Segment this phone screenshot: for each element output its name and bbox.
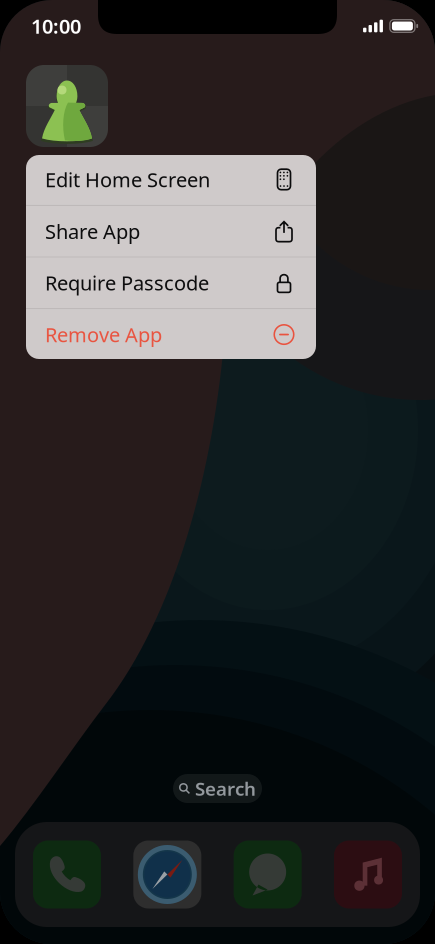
staticText: Require Passcode xyxy=(45,270,209,296)
staticText: Search xyxy=(195,776,256,801)
button[interactable]: Require Passcode xyxy=(26,257,316,308)
button[interactable]: Messages xyxy=(234,840,302,908)
staticText: Remove App xyxy=(45,321,162,348)
button[interactable]: Safari xyxy=(133,840,201,908)
staticText: 10:00 xyxy=(31,13,81,39)
button[interactable]: Music xyxy=(334,840,402,908)
button[interactable]: Edit Home Screen xyxy=(26,154,316,205)
staticText: Edit Home Screen xyxy=(45,166,210,193)
button[interactable]: Remove App xyxy=(26,309,316,360)
button[interactable]: Share App xyxy=(26,206,316,257)
staticText: Share App xyxy=(45,218,140,244)
button[interactable]: Phone xyxy=(33,840,101,908)
button[interactable]: Search xyxy=(173,774,262,803)
